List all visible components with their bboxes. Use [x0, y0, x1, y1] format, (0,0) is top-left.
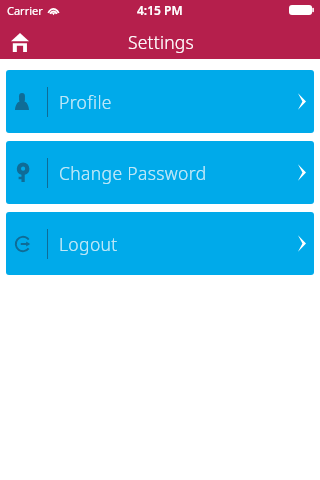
staticText: Settings	[128, 30, 194, 54]
staticText: Change Password	[59, 161, 207, 185]
staticText: Logout	[59, 232, 118, 256]
button[interactable]: Home	[1, 24, 39, 59]
button[interactable]: Logout	[6, 212, 314, 275]
button[interactable]: Profile	[6, 70, 314, 133]
button[interactable]: Change Password	[6, 141, 314, 204]
staticText: Carrier	[7, 3, 43, 18]
staticText: Profile	[59, 90, 112, 114]
staticText: 4:15 PM	[137, 2, 183, 18]
